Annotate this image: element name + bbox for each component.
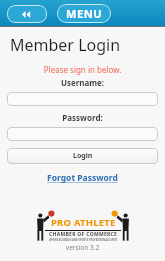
staticText: version 3.2 xyxy=(0,243,165,252)
staticText: CHAMBER OF COMMERCE xyxy=(49,231,118,238)
staticText: Please sign in below. xyxy=(7,64,158,75)
staticText: Forgot Password xyxy=(47,172,118,184)
staticText: Username: xyxy=(7,77,158,88)
staticText: MENU xyxy=(66,6,103,21)
button[interactable]: Login xyxy=(7,148,158,164)
button[interactable]: MENU xyxy=(57,4,111,23)
staticText: Login xyxy=(73,151,93,161)
staticText: PRO ATHLETE xyxy=(51,216,116,229)
staticText: Member Login xyxy=(10,34,121,56)
button[interactable]: Forgot Password xyxy=(45,170,120,186)
button[interactable] xyxy=(7,127,158,141)
button[interactable] xyxy=(7,92,158,106)
staticText: WHERE BUSINESS AND SPORTS PROFESSIONALS … xyxy=(49,238,118,242)
staticText: Password: xyxy=(7,112,158,123)
button[interactable]: Back xyxy=(7,5,47,23)
